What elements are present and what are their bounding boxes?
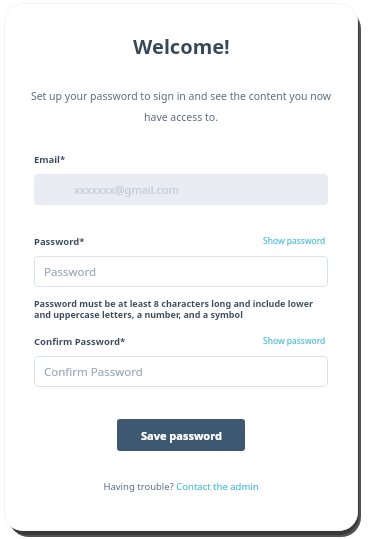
staticText: Save password xyxy=(141,428,222,443)
staticText: Password xyxy=(44,264,97,280)
button[interactable]: Show password xyxy=(261,333,328,349)
button[interactable]: Confirm Password xyxy=(34,356,328,387)
staticText: Confirm Password* xyxy=(34,335,126,348)
staticText: Email* xyxy=(34,153,66,166)
button[interactable]: Show password xyxy=(261,233,328,249)
staticText: Password must be at least 8 characters l… xyxy=(34,297,328,321)
staticText: Confirm Password xyxy=(44,364,143,380)
staticText: xxxxxxx@gmail.com xyxy=(74,182,179,197)
staticText: Welcome! xyxy=(133,33,230,60)
staticText: Set up your password to sign in and see … xyxy=(30,89,332,124)
staticText: Show password xyxy=(263,335,326,347)
staticText: Password* xyxy=(34,235,85,248)
button[interactable]: xxxxxxx@gmail.com xyxy=(34,174,328,205)
button[interactable]: Password xyxy=(34,256,328,287)
button[interactable]: Having trouble? Contact the admin xyxy=(99,478,263,495)
staticText: Show password xyxy=(263,235,326,247)
button[interactable]: Save password xyxy=(117,419,245,451)
staticText: Having trouble? Contact the admin xyxy=(103,480,259,493)
